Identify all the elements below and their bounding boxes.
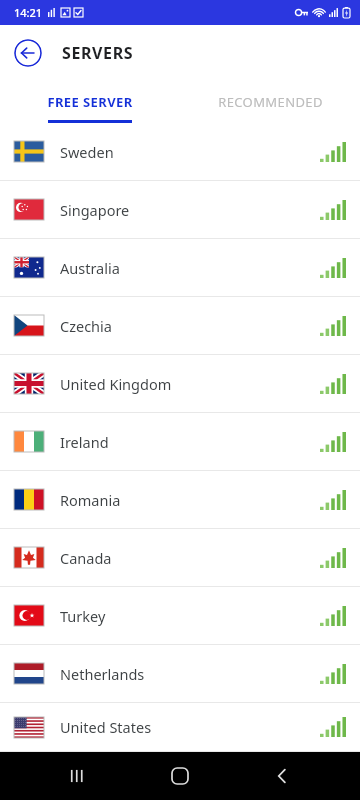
staticText: United States <box>60 717 152 737</box>
button[interactable]: Ireland <box>0 413 360 471</box>
staticText: Czechia <box>60 316 112 336</box>
button[interactable]: Sweden <box>0 123 360 181</box>
staticText: 14:21 <box>14 5 43 20</box>
staticText: Romania <box>60 490 121 510</box>
staticText: Turkey <box>60 606 106 626</box>
button[interactable]: Australia <box>0 239 360 297</box>
staticText: Netherlands <box>60 664 145 684</box>
button[interactable]: Czechia <box>0 297 360 355</box>
staticText: Singapore <box>60 200 130 220</box>
button[interactable]: RECOMMENDED <box>180 80 360 123</box>
button[interactable]: Home <box>156 752 204 800</box>
button[interactable]: FREE SERVER <box>0 80 180 123</box>
staticText: Canada <box>60 548 112 568</box>
button[interactable]: Singapore <box>0 181 360 239</box>
button[interactable]: Netherlands <box>0 645 360 703</box>
staticText: Australia <box>60 258 120 278</box>
button[interactable]: Recents <box>54 752 102 800</box>
button[interactable]: United States <box>0 703 360 752</box>
button[interactable]: Back <box>258 752 306 800</box>
button[interactable]: Romania <box>0 471 360 529</box>
staticText: United Kingdom <box>60 374 172 394</box>
button[interactable]: United Kingdom <box>0 355 360 413</box>
button[interactable]: Canada <box>0 529 360 587</box>
staticText: SERVERS <box>62 42 134 64</box>
button[interactable]: Turkey <box>0 587 360 645</box>
button[interactable]: Back <box>14 39 42 67</box>
staticText: Sweden <box>60 142 114 162</box>
staticText: FREE SERVER <box>47 93 133 111</box>
staticText: RECOMMENDED <box>218 93 323 111</box>
staticText: Ireland <box>60 432 109 452</box>
